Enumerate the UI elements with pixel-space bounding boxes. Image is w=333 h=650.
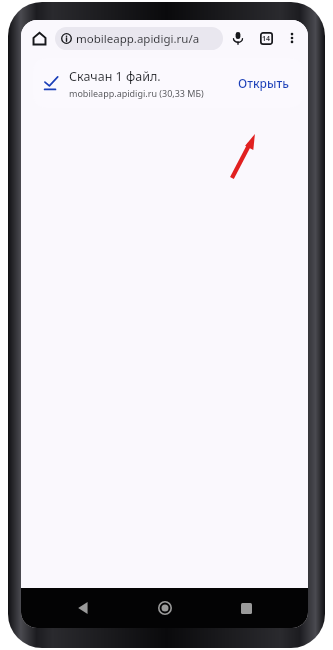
button[interactable]: More options	[280, 26, 304, 50]
button[interactable]: Back	[63, 588, 103, 628]
staticText: Скачан 1 файл.	[69, 68, 161, 85]
staticText: 14	[262, 34, 271, 44]
button[interactable]: Recent apps	[226, 588, 266, 628]
staticText: mobileapp.apidigi.ru/a	[76, 31, 200, 47]
button[interactable]: Home	[145, 588, 185, 628]
staticText: mobileapp.apidigi.ru (30,33 МБ)	[69, 87, 204, 99]
button[interactable]: Tabs, 14 open	[254, 26, 278, 50]
staticText: Открыть	[238, 75, 289, 91]
button[interactable]: mobileapp.apidigi.ru/a	[55, 27, 223, 50]
button[interactable]: Открыть	[234, 72, 293, 94]
button[interactable]: Скачан 1 файл.	[33, 58, 303, 108]
button[interactable]: Voice search	[226, 26, 250, 50]
button[interactable]: Home	[27, 26, 51, 50]
